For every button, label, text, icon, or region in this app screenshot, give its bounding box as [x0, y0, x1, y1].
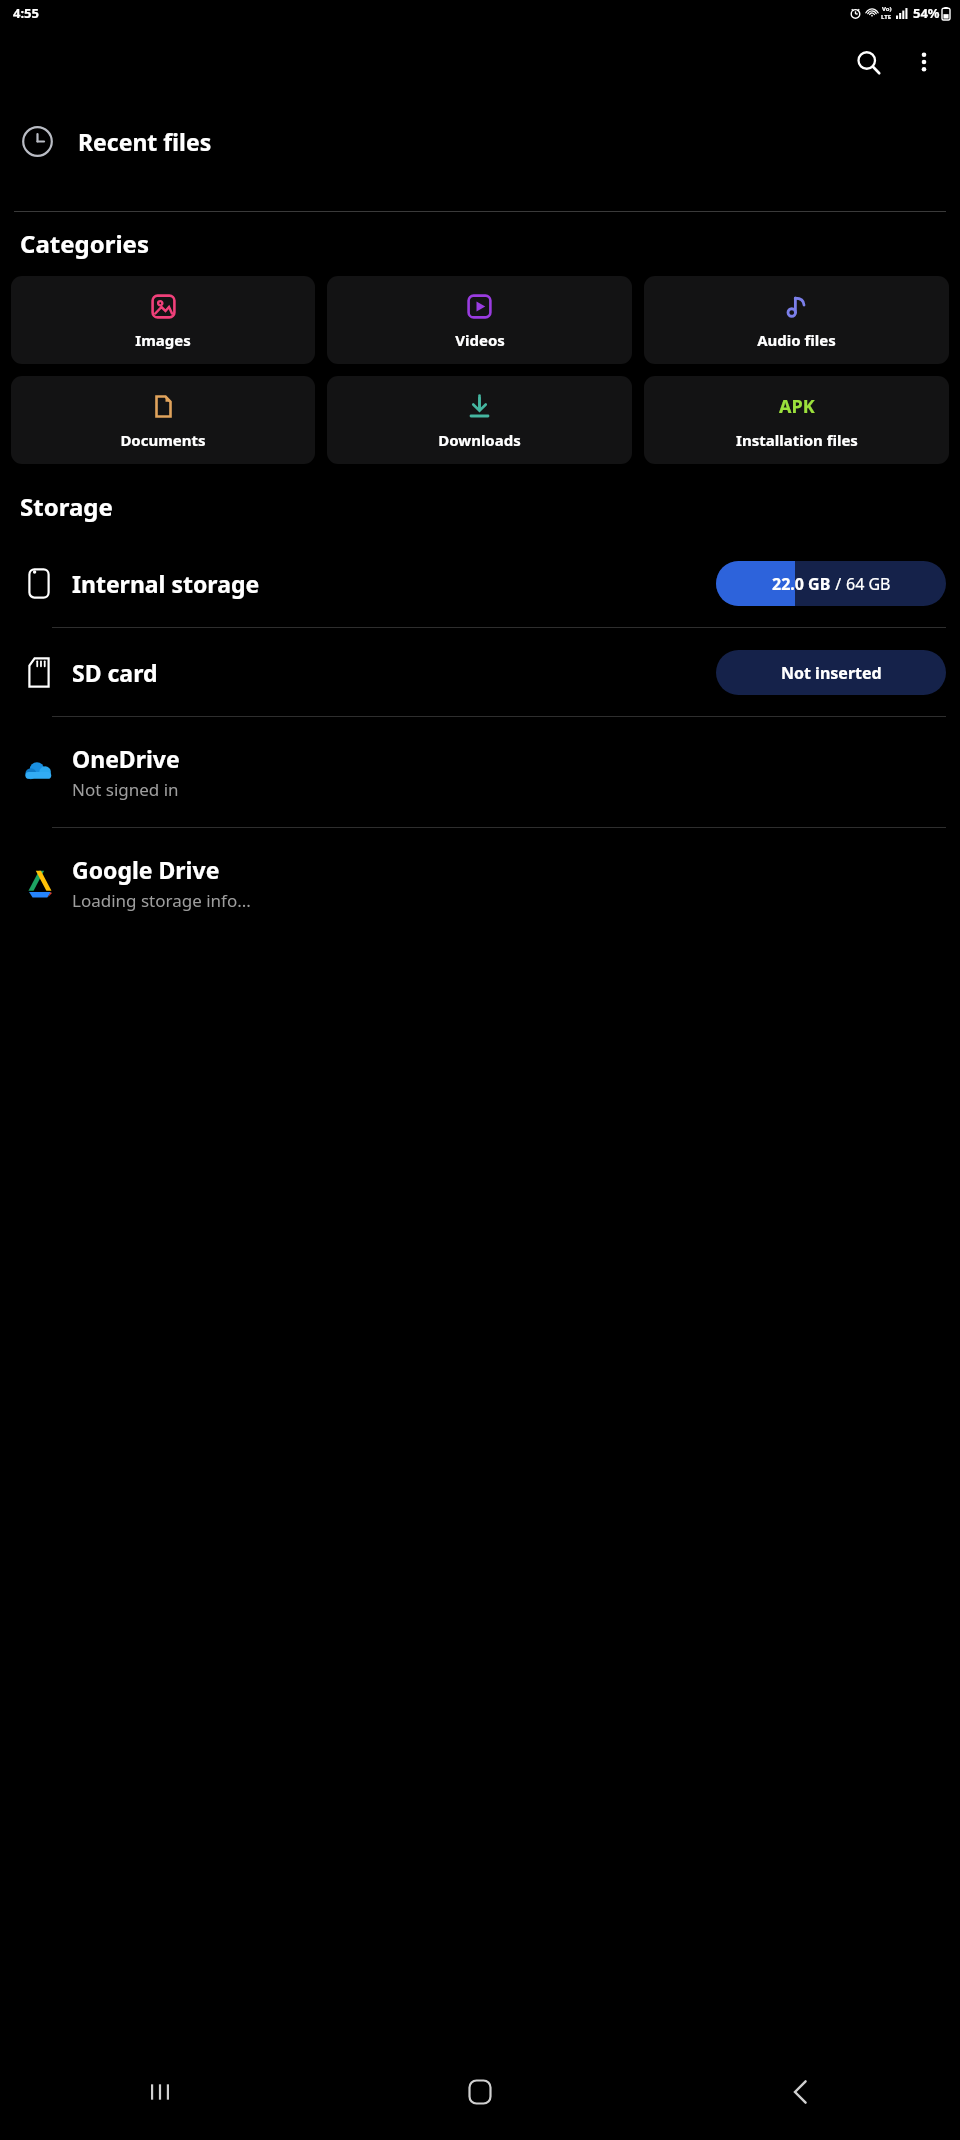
staticText: OneDrive [72, 743, 180, 774]
button[interactable]: Documents [11, 376, 315, 464]
button[interactable]: Google Drive [0, 828, 960, 938]
staticText: Audio files [757, 330, 836, 350]
staticText: Not inserted [781, 662, 882, 684]
staticText: / [831, 573, 846, 595]
button[interactable]: Internal storage [0, 539, 960, 627]
staticText: Not signed in [72, 778, 179, 801]
button[interactable]: Recent files [0, 98, 960, 184]
staticText: Documents [120, 430, 206, 450]
staticText: Loading storage info... [72, 889, 251, 912]
staticText: Videos [455, 330, 505, 350]
staticText: LTE [881, 13, 892, 21]
staticText: Installation files [736, 430, 858, 450]
button[interactable]: More options [902, 40, 946, 84]
button[interactable]: Downloads [327, 376, 632, 464]
button[interactable]: Images [11, 276, 315, 364]
button[interactable]: Videos [327, 276, 632, 364]
staticText: Recent files [78, 126, 212, 157]
staticText: SD card [72, 657, 158, 688]
staticText: 64 GB [846, 573, 891, 595]
button[interactable]: Search [844, 38, 892, 86]
button[interactable]: Recents [0, 2044, 320, 2140]
button[interactable]: SD card [0, 628, 960, 716]
staticText: APK [779, 394, 815, 419]
button[interactable]: APK [644, 376, 949, 464]
button[interactable]: Back [640, 2044, 960, 2140]
staticText: 4:55 [13, 4, 39, 22]
button[interactable]: Audio files [644, 276, 949, 364]
staticText: Internal storage [72, 568, 260, 599]
button[interactable]: OneDrive [0, 717, 960, 827]
staticText: Storage [20, 490, 113, 523]
staticText: Vo) [882, 5, 892, 13]
staticText: Images [135, 330, 191, 350]
staticText: 54% [913, 4, 940, 22]
staticText: Google Drive [72, 854, 220, 885]
staticText: Downloads [438, 430, 521, 450]
staticText: Categories [20, 227, 149, 260]
staticText: 22.0 GB [772, 573, 831, 595]
button[interactable]: Home [320, 2044, 640, 2140]
